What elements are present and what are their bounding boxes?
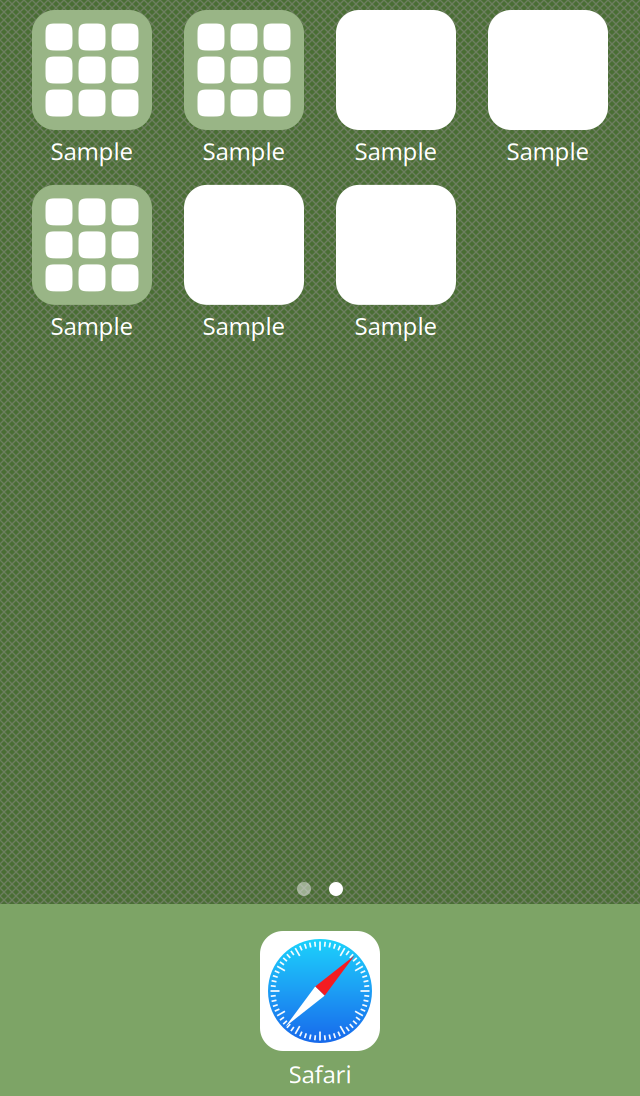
button[interactable]: Sample (336, 185, 456, 342)
staticText: Sample (354, 135, 437, 167)
staticText: Sample (202, 135, 285, 167)
button[interactable]: Sample (336, 10, 456, 167)
button[interactable]: Sample (488, 10, 608, 167)
staticText: Sample (50, 310, 133, 342)
button[interactable]: Sample (32, 10, 152, 167)
staticText: Sample (202, 310, 285, 342)
button[interactable]: Sample (32, 185, 152, 342)
button[interactable]: Sample (184, 185, 304, 342)
staticText: Sample (506, 135, 589, 167)
button[interactable]: Safari (260, 931, 380, 1090)
staticText: Sample (354, 310, 437, 342)
button[interactable]: Sample (184, 10, 304, 167)
staticText: Safari (288, 1058, 351, 1090)
staticText: Sample (50, 135, 133, 167)
